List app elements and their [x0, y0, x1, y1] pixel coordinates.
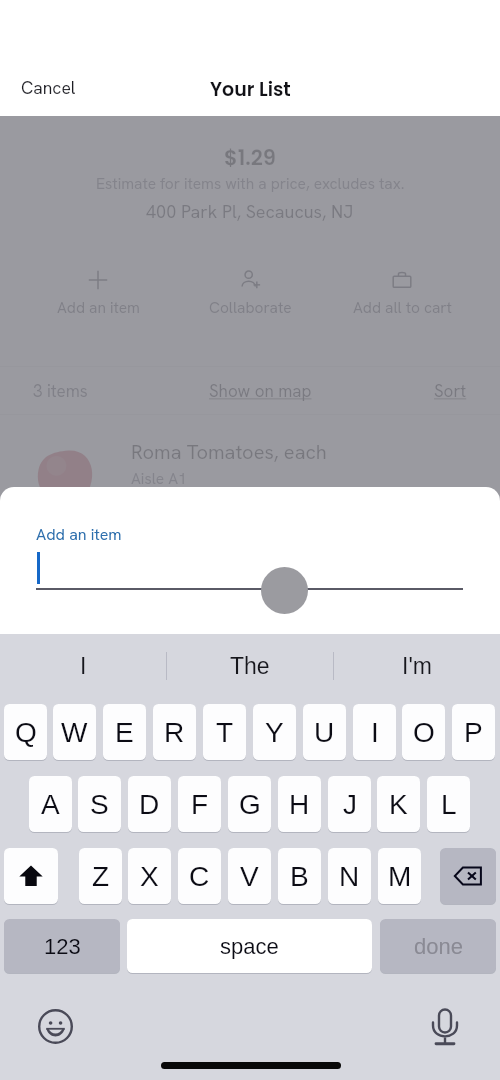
staticText: done — [414, 934, 463, 959]
button[interactable]: B — [278, 848, 321, 904]
button[interactable]: H — [278, 776, 321, 832]
button[interactable]: Roma Tomatoes, each — [0, 426, 500, 492]
button[interactable]: V — [228, 848, 271, 904]
button[interactable]: R — [153, 704, 196, 760]
button[interactable]: Dictation — [419, 1001, 471, 1053]
staticText: Sort — [434, 380, 467, 402]
staticText: 400 Park Pl, Secaucus, NJ — [146, 200, 354, 223]
staticText: L — [441, 789, 457, 820]
button[interactable]: Y — [253, 704, 296, 760]
button[interactable]: A — [29, 776, 72, 832]
staticText: C — [189, 861, 210, 892]
button[interactable]: S — [78, 776, 121, 832]
staticText: Q — [15, 717, 37, 748]
button[interactable]: E — [103, 704, 146, 760]
button[interactable]: Backspace — [440, 848, 496, 904]
button[interactable]: The — [167, 634, 333, 698]
button[interactable]: I'm — [334, 634, 500, 698]
button[interactable]: M — [378, 848, 421, 904]
button[interactable]: Q — [4, 704, 47, 760]
staticText: Roma Tomatoes, each — [131, 439, 327, 465]
button[interactable]: Add an item — [36, 524, 122, 545]
staticText: 123 — [44, 934, 81, 959]
button[interactable]: X — [128, 848, 171, 904]
button[interactable]: G — [228, 776, 271, 832]
button[interactable]: J — [328, 776, 371, 832]
button[interactable]: Cancel — [8, 70, 89, 105]
staticText: Add all to cart — [353, 297, 452, 317]
button[interactable]: Shift — [4, 848, 58, 904]
button[interactable]: Add all to cart — [326, 262, 478, 317]
staticText: H — [289, 789, 310, 820]
staticText: Add an item — [57, 297, 140, 317]
staticText: W — [61, 717, 88, 748]
button[interactable]: C — [178, 848, 221, 904]
button[interactable]: space — [127, 919, 372, 973]
button[interactable]: Emoji keyboard — [29, 1000, 81, 1052]
button[interactable]: L — [427, 776, 470, 832]
staticText: I — [80, 653, 87, 679]
staticText: R — [164, 717, 185, 748]
staticText: J — [343, 789, 357, 820]
staticText: The — [230, 653, 270, 679]
button[interactable]: 123 — [4, 919, 120, 973]
staticText: I'm — [402, 653, 432, 679]
staticText: X — [140, 861, 159, 892]
staticText: Y — [265, 717, 284, 748]
staticText: 3 items — [33, 380, 88, 402]
staticText: space — [220, 934, 279, 959]
button[interactable]: Z — [79, 848, 122, 904]
button[interactable]: N — [328, 848, 371, 904]
staticText: N — [339, 861, 360, 892]
staticText: Estimate for items with a price, exclude… — [96, 173, 405, 193]
staticText: P — [464, 717, 483, 748]
staticText: Cancel — [21, 76, 76, 99]
staticText: F — [191, 789, 209, 820]
button[interactable]: I — [0, 634, 166, 698]
staticText: $1.29 — [224, 143, 276, 172]
button[interactable]: Collaborate — [174, 262, 326, 317]
staticText: U — [314, 717, 335, 748]
staticText: Your List — [210, 76, 291, 103]
staticText: O — [413, 717, 435, 748]
staticText: Add an item — [36, 524, 122, 545]
staticText: K — [389, 789, 408, 820]
button[interactable]: I — [353, 704, 396, 760]
staticText: G — [239, 789, 261, 820]
button[interactable]: P — [452, 704, 495, 760]
staticText: M — [388, 861, 412, 892]
button[interactable]: D — [128, 776, 171, 832]
button[interactable]: done — [380, 919, 496, 973]
button[interactable]: T — [203, 704, 246, 760]
staticText: I — [371, 717, 379, 748]
staticText: Z — [92, 861, 110, 892]
button[interactable]: Add an item — [22, 262, 174, 317]
button[interactable]: U — [303, 704, 346, 760]
button[interactable]: O — [402, 704, 445, 760]
staticText: E — [115, 717, 134, 748]
button[interactable]: W — [53, 704, 96, 760]
button[interactable]: Show on map — [209, 380, 312, 402]
staticText: Collaborate — [209, 297, 292, 317]
staticText: Aisle A1 — [131, 468, 187, 488]
staticText: V — [240, 861, 259, 892]
staticText: A — [41, 789, 60, 820]
button[interactable]: K — [377, 776, 420, 832]
button[interactable]: F — [178, 776, 221, 832]
staticText: B — [290, 861, 309, 892]
staticText: T — [216, 717, 234, 748]
staticText: S — [90, 789, 109, 820]
button[interactable]: Sort — [434, 380, 467, 402]
staticText: D — [139, 789, 160, 820]
staticText: Show on map — [209, 380, 312, 402]
